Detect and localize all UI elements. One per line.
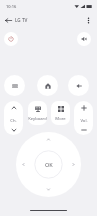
staticText: LG TV — [15, 17, 28, 23]
button[interactable]: Back — [2, 14, 14, 26]
button[interactable]: Menu — [4, 75, 25, 96]
staticText: Keyboard — [28, 116, 47, 122]
button[interactable]: Mute — [77, 32, 91, 46]
button[interactable]: Power — [4, 32, 18, 46]
button[interactable]: Back — [68, 75, 89, 96]
staticText: OK — [45, 161, 53, 168]
button[interactable]: More options — [82, 14, 95, 27]
button[interactable]: More — [51, 101, 70, 125]
button[interactable]: Channel down — [4, 125, 23, 135]
button[interactable]: Volume up — [74, 101, 93, 114]
staticText: More — [55, 116, 66, 122]
staticText: 10:16 — [6, 4, 17, 9]
button[interactable]: Keyboard — [28, 101, 47, 125]
button[interactable]: Home — [37, 75, 58, 96]
button[interactable]: Channel up — [4, 101, 23, 114]
button[interactable]: OK — [35, 151, 62, 178]
staticText: Ch. — [10, 118, 17, 124]
staticText: Vol. — [80, 118, 88, 124]
button[interactable]: Volume down — [74, 125, 93, 135]
